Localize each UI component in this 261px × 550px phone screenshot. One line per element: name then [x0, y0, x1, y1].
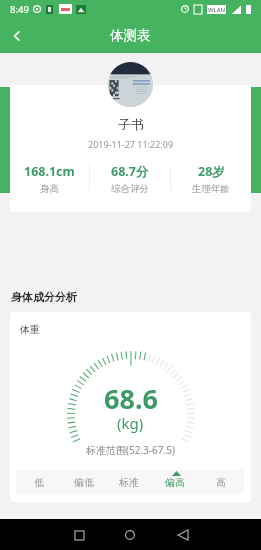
staticText: 偏高 [165, 476, 185, 489]
staticText: 168.1cm [24, 163, 75, 180]
staticText: WLAN [208, 6, 226, 14]
staticText: 身体成分分析 [11, 290, 77, 304]
staticText: 标准 [119, 476, 139, 489]
button[interactable]: Home [119, 524, 141, 546]
staticText: 68.6 [104, 380, 158, 417]
staticText: 标准范围(52.3-67.5) [86, 443, 175, 457]
staticText: 28岁 [198, 163, 225, 180]
staticText: 偏低 [74, 476, 94, 489]
button[interactable]: 低 [16, 470, 61, 494]
button[interactable]: Back [172, 524, 194, 546]
button[interactable]: 168.1cm [10, 163, 89, 193]
staticText: 体测表 [110, 27, 151, 44]
staticText: 68.7分 [111, 163, 149, 180]
staticText: 高 [216, 476, 226, 489]
staticText: 8:49 [10, 3, 29, 16]
staticText: 体重 [20, 323, 40, 336]
staticText: 2019-11-27 11:22:09 [88, 138, 174, 150]
button[interactable]: 偏低 [61, 470, 106, 494]
staticText: 身高 [40, 183, 59, 193]
button[interactable]: Profile photo [108, 62, 153, 107]
staticText: 低 [34, 476, 44, 489]
staticText: 综合评分 [111, 183, 149, 193]
staticText: (kg) [117, 413, 144, 433]
button[interactable]: 高 [198, 470, 244, 494]
button[interactable]: 28岁 [171, 163, 251, 193]
staticText: 子书 [118, 116, 144, 132]
button[interactable]: 68.7分 [90, 163, 170, 193]
button[interactable]: 偏高 [152, 470, 198, 494]
button[interactable]: 标准 [106, 470, 152, 494]
button[interactable]: Recents [68, 524, 90, 546]
staticText: 生理年龄 [192, 183, 230, 193]
button[interactable]: Back [2, 21, 32, 51]
